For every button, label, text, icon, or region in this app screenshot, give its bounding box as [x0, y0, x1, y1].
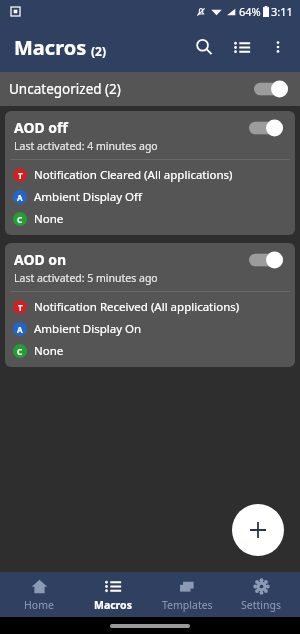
- staticText: A: [17, 192, 23, 203]
- staticText: T: [18, 170, 23, 181]
- staticText: Notification Cleared (All applications): [34, 167, 233, 183]
- staticText: A: [17, 324, 23, 335]
- staticText: C: [17, 214, 23, 225]
- button[interactable]: Macros: [78, 572, 148, 617]
- button[interactable]: More options: [261, 30, 295, 64]
- staticText: (2): [91, 43, 107, 59]
- staticText: Templates: [162, 598, 213, 612]
- button[interactable]: Enable: [249, 251, 283, 269]
- button[interactable]: Add macro: [232, 504, 284, 556]
- staticText: Macros: [94, 598, 132, 612]
- staticText: Macros: [14, 34, 87, 61]
- staticText: Home: [24, 598, 54, 612]
- button[interactable]: Enable: [249, 119, 283, 137]
- staticText: AOD on: [14, 250, 67, 269]
- button[interactable]: Home: [4, 572, 74, 617]
- button[interactable]: AOD on: [5, 243, 295, 367]
- staticText: Notification Received (All applications): [34, 299, 240, 315]
- staticText: Ambient Display Off: [34, 189, 142, 205]
- button[interactable]: Uncategorized (2): [0, 72, 300, 106]
- button[interactable]: Settings: [226, 572, 296, 617]
- button[interactable]: Templates: [152, 572, 222, 617]
- button[interactable]: Enable: [254, 80, 288, 98]
- staticText: None: [34, 211, 64, 227]
- staticText: Uncategorized (2): [9, 80, 121, 98]
- staticText: Settings: [241, 598, 281, 612]
- staticText: None: [34, 343, 64, 359]
- staticText: AOD off: [14, 118, 68, 137]
- staticText: Last activated: 5 minutes ago: [14, 271, 158, 285]
- staticText: Last activated: 4 minutes ago: [14, 139, 158, 153]
- staticText: C: [17, 346, 23, 357]
- button[interactable]: Toggle view: [223, 28, 261, 66]
- button[interactable]: Search: [185, 28, 223, 66]
- staticText: Ambient Display On: [34, 321, 142, 337]
- staticText: 64%: [239, 4, 261, 19]
- button[interactable]: AOD off: [5, 111, 295, 235]
- staticText: T: [18, 302, 23, 313]
- staticText: 3:11: [271, 4, 293, 19]
